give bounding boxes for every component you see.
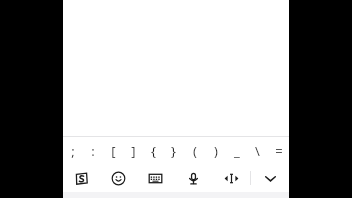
button[interactable]: :: [83, 137, 103, 164]
button[interactable]: }: [163, 137, 184, 164]
button[interactable]: Keyboard layout: [137, 164, 174, 192]
button[interactable]: Move cursor: [212, 164, 250, 192]
staticText: \: [255, 142, 260, 160]
staticText: {: [151, 142, 156, 160]
staticText: [: [111, 142, 116, 160]
staticText: (: [193, 142, 197, 160]
button[interactable]: Voice input: [174, 164, 212, 192]
button[interactable]: =: [268, 137, 289, 164]
staticText: ]: [131, 142, 136, 160]
staticText: :: [91, 142, 95, 160]
button[interactable]: \: [247, 137, 268, 164]
button[interactable]: Emoji: [100, 164, 137, 192]
button[interactable]: (: [184, 137, 205, 164]
staticText: ;: [71, 142, 75, 160]
button[interactable]: ): [205, 137, 226, 164]
button[interactable]: Hide keyboard: [251, 164, 289, 192]
button[interactable]: ]: [123, 137, 143, 164]
staticText: _: [234, 142, 240, 160]
button[interactable]: _: [226, 137, 247, 164]
button[interactable]: {: [143, 137, 163, 164]
button[interactable]: [: [103, 137, 123, 164]
button[interactable]: Input method: [63, 164, 100, 192]
staticText: }: [171, 142, 176, 160]
button[interactable]: ;: [63, 137, 83, 164]
staticText: =: [275, 142, 283, 160]
staticText: ): [214, 142, 218, 160]
